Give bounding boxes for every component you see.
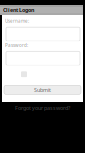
staticText: Submit — [34, 86, 51, 93]
button[interactable]: Forgot your password? — [0, 102, 85, 114]
button[interactable]: Remember me — [21, 71, 27, 77]
staticText: Username: — [5, 18, 29, 24]
button[interactable]: Submit — [4, 85, 81, 94]
staticText: Client Logon — [3, 6, 34, 14]
staticText: Forgot your password? — [15, 104, 70, 112]
staticText: Password: — [5, 42, 28, 48]
